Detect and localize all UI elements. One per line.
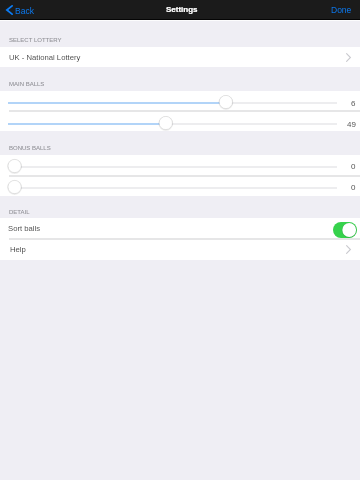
button[interactable]: UK - National Lottery [0,47,360,67]
staticText: MAIN BALLS [9,81,45,88]
button[interactable] [0,115,337,131]
staticText: Back [15,6,34,15]
staticText: 0 [351,162,356,171]
staticText: BONUS BALLS [9,145,51,152]
staticText: Help [10,245,26,254]
staticText: 6 [351,99,356,108]
other: Open [346,245,351,254]
staticText: UK - National Lottery [9,53,81,62]
button[interactable]: Back [0,5,38,15]
other: Open [346,53,351,62]
button[interactable] [0,94,337,110]
staticText: Settings [166,5,198,14]
button[interactable]: Sort balls [333,222,357,238]
staticText: SELECT LOTTERY [9,37,62,44]
staticText: 49 [347,120,356,129]
button[interactable]: Done [327,5,360,14]
staticText: Sort balls [8,224,41,233]
button[interactable] [0,179,337,195]
staticText: Done [331,5,352,14]
staticText: DETAIL [9,209,30,216]
button[interactable]: Help [0,239,360,260]
button[interactable]: Sort balls [0,218,360,239]
button[interactable] [0,158,337,174]
staticText: 0 [351,183,356,192]
